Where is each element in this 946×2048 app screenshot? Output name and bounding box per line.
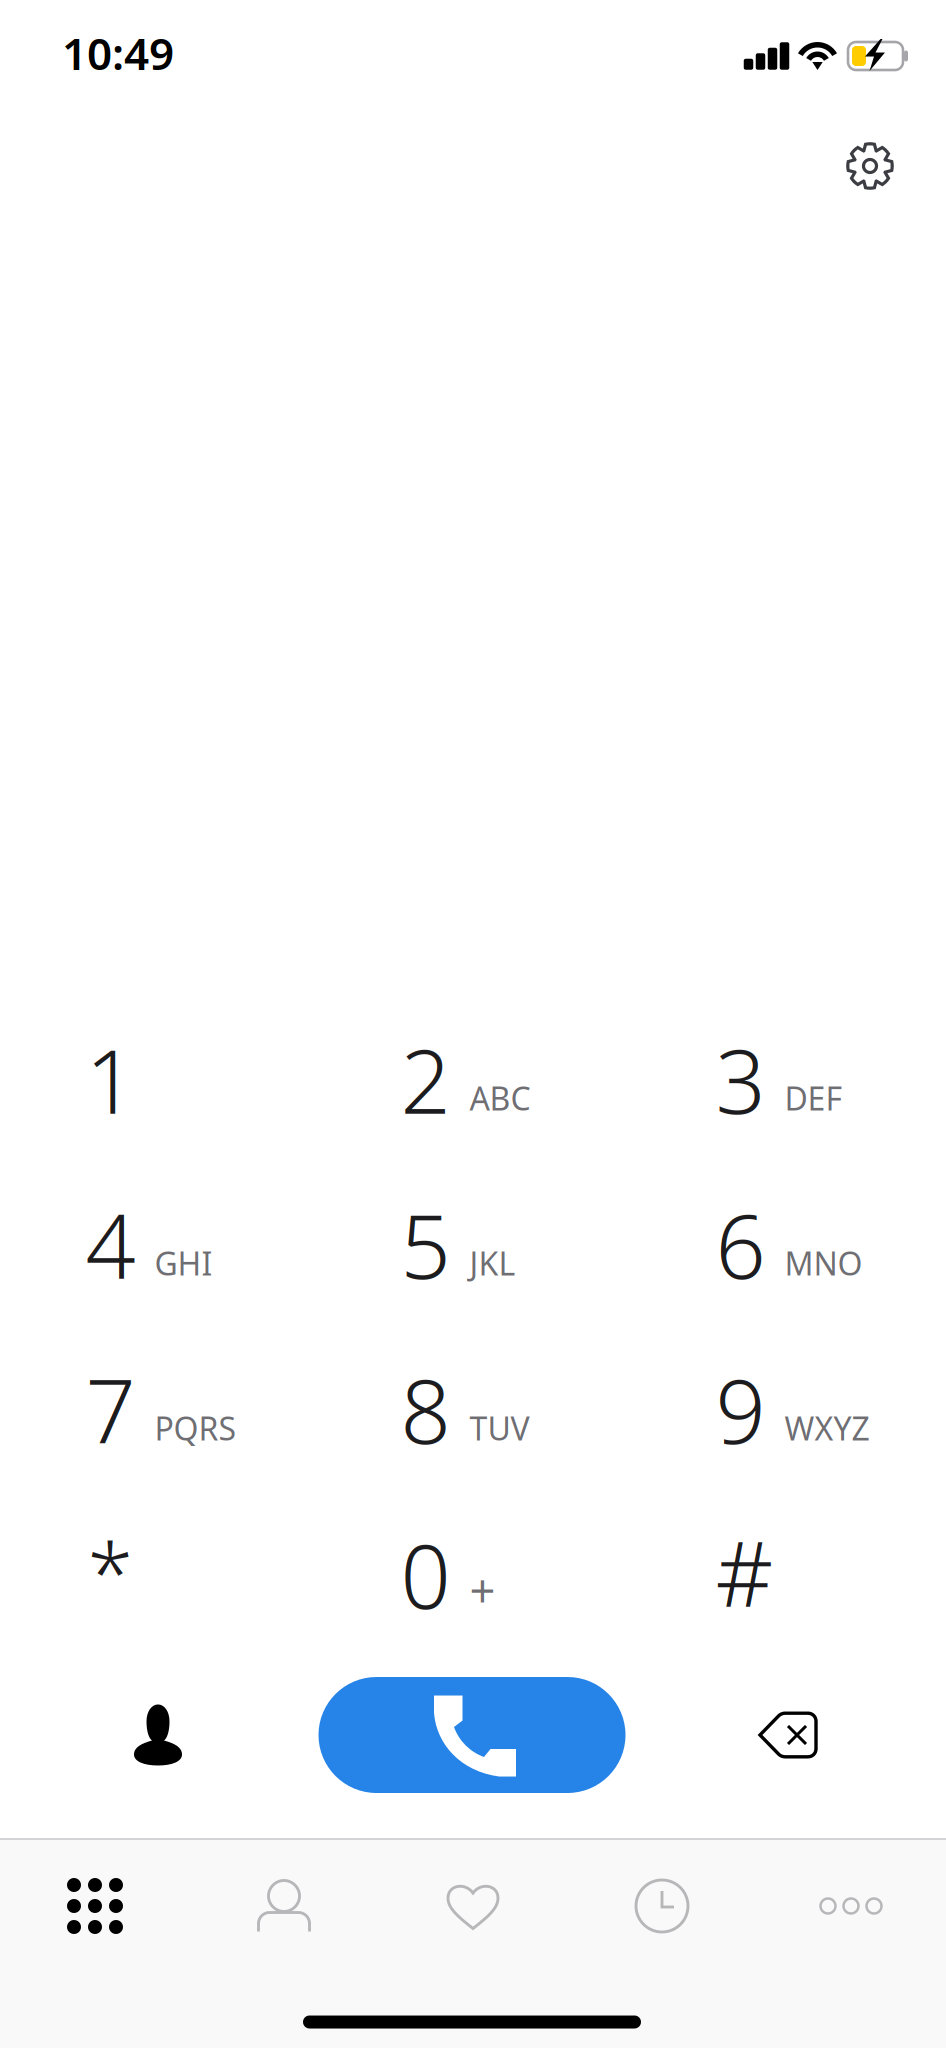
button[interactable]: Call xyxy=(318,1677,625,1793)
button[interactable]: Contacts xyxy=(189,1838,378,1974)
button[interactable]: Contacts xyxy=(83,1665,233,1805)
button[interactable]: Recents xyxy=(567,1838,756,1974)
button[interactable]: Settings xyxy=(822,118,918,214)
button[interactable]: 6 xyxy=(630,1162,945,1327)
staticText: 7 xyxy=(85,1351,135,1468)
button[interactable]: 2 xyxy=(315,997,630,1162)
button[interactable]: More xyxy=(756,1838,945,1974)
button[interactable]: 5 xyxy=(315,1162,630,1327)
staticText: ABC xyxy=(469,1077,530,1119)
staticText: 9 xyxy=(715,1351,765,1468)
button[interactable]: Keypad xyxy=(0,1838,189,1974)
button[interactable]: 0 xyxy=(315,1492,630,1657)
staticText: TUV xyxy=(469,1407,529,1449)
button[interactable]: 4 xyxy=(0,1162,315,1327)
button[interactable]: 8 xyxy=(315,1327,630,1492)
staticText: 0 xyxy=(400,1516,450,1633)
button[interactable]: Delete xyxy=(713,1665,863,1805)
button[interactable]: 3 xyxy=(630,997,945,1162)
button[interactable]: # xyxy=(630,1492,945,1657)
staticText: 3 xyxy=(715,1021,765,1138)
button[interactable]: 1 xyxy=(0,997,315,1162)
staticText: 2 xyxy=(400,1021,450,1138)
staticText: GHI xyxy=(154,1242,212,1284)
staticText: 4 xyxy=(85,1186,135,1303)
staticText: PQRS xyxy=(154,1407,236,1449)
staticText: JKL xyxy=(469,1242,515,1284)
staticText: WXYZ xyxy=(784,1407,869,1449)
staticText: 8 xyxy=(400,1351,450,1468)
staticText: 10:49 xyxy=(62,24,174,82)
staticText: * xyxy=(87,1517,133,1626)
staticText: 6 xyxy=(715,1186,765,1303)
button[interactable]: 9 xyxy=(630,1327,945,1492)
button[interactable]: * xyxy=(0,1492,315,1657)
staticText: DEF xyxy=(784,1077,842,1119)
staticText: MNO xyxy=(784,1242,862,1284)
staticText: # xyxy=(715,1513,773,1632)
button[interactable]: Favorites xyxy=(378,1838,567,1974)
button[interactable]: 7 xyxy=(0,1327,315,1492)
staticText: 5 xyxy=(400,1186,450,1303)
staticText: 1 xyxy=(85,1021,135,1138)
staticText: + xyxy=(469,1560,495,1620)
